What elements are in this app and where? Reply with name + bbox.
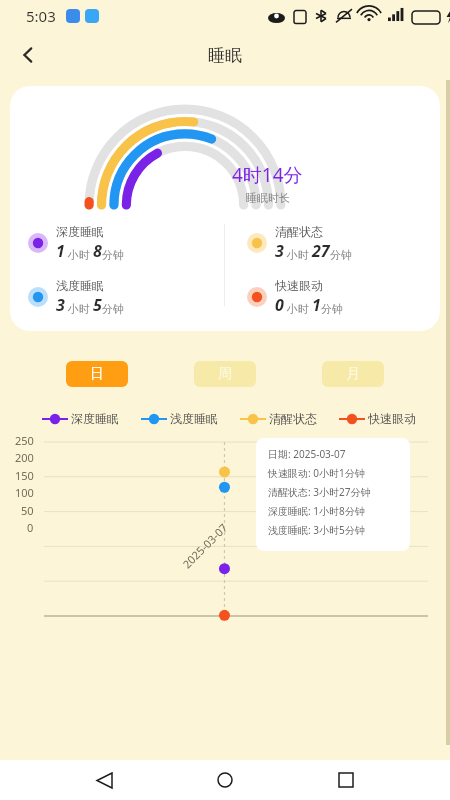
staticText: 浅度睡眠 bbox=[170, 411, 218, 426]
staticText: 150 bbox=[15, 468, 34, 483]
staticText: 深度睡眠: 1小时8分钟 bbox=[268, 504, 365, 518]
staticText: 2025-03-07 bbox=[179, 520, 231, 571]
staticText: 分钟 bbox=[102, 248, 124, 262]
button[interactable]: 快速眼动 bbox=[339, 411, 416, 426]
staticText: 日期: 2025-03-07 bbox=[268, 447, 346, 461]
button[interactable]: 浅度睡眠 bbox=[141, 411, 218, 426]
staticText: 100 bbox=[15, 485, 34, 500]
staticText: 快速眼动 bbox=[368, 411, 416, 426]
staticText: 3 bbox=[275, 240, 284, 262]
staticText: 睡眠时长 bbox=[246, 191, 290, 205]
button[interactable]: 清醒状态 bbox=[240, 411, 317, 426]
staticText: 5:03 bbox=[26, 6, 56, 26]
staticText: 1 bbox=[56, 240, 65, 262]
staticText: 4时14分 bbox=[232, 162, 303, 188]
staticText: 小时 bbox=[65, 301, 93, 316]
staticText: 分钟 bbox=[102, 302, 124, 316]
staticText: 50 bbox=[21, 503, 34, 518]
staticText: 周 bbox=[218, 365, 232, 383]
staticText: 清醒状态 bbox=[275, 224, 323, 239]
staticText: 小时 bbox=[284, 301, 312, 316]
staticText: 清醒状态 bbox=[269, 411, 317, 426]
button[interactable]: 深度睡眠 bbox=[42, 411, 119, 426]
staticText: 浅度睡眠 bbox=[56, 278, 104, 293]
staticText: 浅度睡眠: 3小时5分钟 bbox=[268, 523, 365, 537]
staticText: 睡眠 bbox=[208, 45, 242, 66]
staticText: 小时 bbox=[65, 247, 93, 262]
staticText: 250 bbox=[15, 433, 34, 448]
staticText: 分钟 bbox=[321, 302, 343, 316]
staticText: 清醒状态: 3小时27分钟 bbox=[268, 485, 371, 499]
staticText: 日 bbox=[90, 365, 104, 383]
staticText: 深度睡眠 bbox=[71, 411, 119, 426]
staticText: 快速眼动 bbox=[275, 278, 323, 293]
staticText: 27 bbox=[312, 240, 330, 262]
staticText: 3 bbox=[56, 294, 65, 316]
staticText: 深度睡眠 bbox=[56, 224, 104, 239]
staticText: 快速眼动: 0小时1分钟 bbox=[268, 466, 365, 480]
button[interactable]: Back bbox=[87, 763, 121, 797]
staticText: 小时 bbox=[284, 247, 312, 262]
staticText: 月 bbox=[346, 365, 360, 383]
staticText: 0 bbox=[275, 294, 284, 316]
staticText: 分钟 bbox=[330, 248, 352, 262]
staticText: 200 bbox=[15, 450, 34, 465]
button[interactable]: 周 bbox=[194, 361, 256, 387]
staticText: 1 bbox=[312, 294, 321, 316]
staticText: 8 bbox=[93, 240, 102, 262]
button[interactable]: 月 bbox=[322, 361, 384, 387]
button[interactable]: Back bbox=[8, 35, 48, 75]
staticText: 0 bbox=[27, 520, 34, 535]
staticText: 5 bbox=[93, 294, 102, 316]
button[interactable]: Home bbox=[208, 763, 242, 797]
button[interactable]: 日 bbox=[66, 361, 128, 387]
button[interactable]: Recents bbox=[329, 763, 363, 797]
